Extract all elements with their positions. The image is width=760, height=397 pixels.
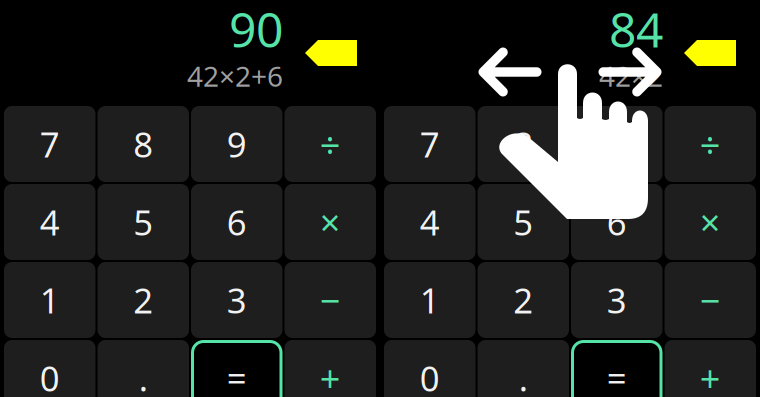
staticText: 6 [227,199,247,245]
staticText: − [700,276,721,324]
button[interactable]: × [664,184,756,260]
button[interactable]: 0 [4,340,95,397]
button[interactable]: 4 [384,184,475,260]
staticText: 7 [420,121,440,167]
staticText: . [519,355,528,397]
staticText: × [320,198,341,246]
button[interactable]: 3 [571,262,662,338]
staticText: 90 [229,0,283,61]
staticText: 3 [607,277,627,323]
button[interactable]: 9 [571,106,662,182]
button[interactable]: 1 [4,262,95,338]
button[interactable]: 2 [97,262,189,338]
staticText: − [320,276,341,324]
staticText: = [607,355,627,397]
staticText: 6 [607,199,627,245]
button[interactable]: = [571,340,662,397]
button[interactable]: . [97,340,189,397]
button[interactable]: 1 [384,262,475,338]
button[interactable]: 6 [191,184,282,260]
button[interactable]: 8 [477,106,569,182]
staticText: 2 [133,277,153,323]
button[interactable]: 7 [4,106,95,182]
staticText: . [139,355,148,397]
staticText: ÷ [320,120,341,168]
button[interactable]: 9 [191,106,282,182]
button[interactable]: 0 [384,340,475,397]
staticText: 0 [420,355,440,397]
button[interactable]: 2 [477,262,569,338]
staticText: 1 [40,277,60,323]
staticText: 42×2 [599,57,663,95]
button[interactable]: 3 [191,262,282,338]
button[interactable]: 5 [477,184,569,260]
staticText: + [320,354,341,397]
button[interactable]: − [664,262,756,338]
button[interactable]: + [664,340,756,397]
button[interactable]: 4 [4,184,95,260]
staticText: 4 [40,199,60,245]
staticText: 4 [420,199,440,245]
button[interactable]: ÷ [284,106,376,182]
staticText: × [700,198,721,246]
staticText: 7 [40,121,60,167]
staticText: 9 [227,121,247,167]
staticText: = [227,355,247,397]
button[interactable]: 7 [384,106,475,182]
staticText: 5 [513,199,533,245]
staticText: 84 [609,0,663,61]
staticText: 2 [513,277,533,323]
staticText: 3 [227,277,247,323]
button[interactable]: = [191,340,282,397]
button[interactable]: 8 [97,106,189,182]
staticText: 42×2+6 [187,57,283,95]
button[interactable]: + [284,340,376,397]
staticText: 0 [40,355,60,397]
staticText: 1 [420,277,440,323]
button[interactable]: × [284,184,376,260]
button[interactable]: − [284,262,376,338]
button[interactable]: ÷ [664,106,756,182]
staticText: 8 [513,121,533,167]
button[interactable]: 6 [571,184,662,260]
staticText: ÷ [700,120,721,168]
staticText: 5 [133,199,153,245]
button[interactable]: 5 [97,184,189,260]
staticText: 8 [133,121,153,167]
button[interactable]: . [477,340,569,397]
staticText: + [700,354,721,397]
